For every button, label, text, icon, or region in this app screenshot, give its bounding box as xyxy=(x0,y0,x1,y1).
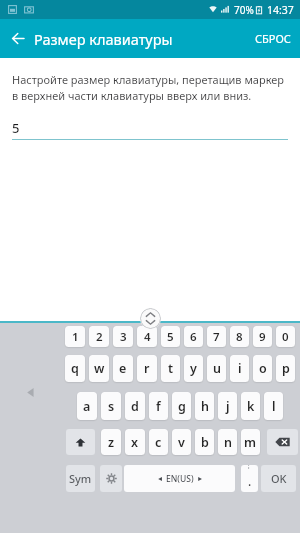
button[interactable]: Settings xyxy=(100,465,122,492)
button[interactable]: 6 xyxy=(184,326,203,347)
staticText: a xyxy=(83,398,91,415)
staticText: j xyxy=(226,398,230,415)
button[interactable]: Back xyxy=(0,19,34,58)
button[interactable]: 9 xyxy=(253,326,272,347)
staticText: b xyxy=(201,434,209,451)
button[interactable]: 2 xyxy=(89,326,109,347)
button[interactable]: ́́́ xyxy=(241,465,258,492)
staticText: 0 xyxy=(282,329,289,345)
staticText: . xyxy=(248,473,252,489)
staticText: СБРОС xyxy=(255,31,291,46)
staticText: n xyxy=(224,434,232,451)
button[interactable]: f xyxy=(149,392,168,420)
button[interactable]: c xyxy=(149,429,168,455)
staticText: f xyxy=(156,398,161,415)
button[interactable]: z xyxy=(101,429,121,455)
button[interactable]: l xyxy=(264,392,283,420)
staticText: 5 xyxy=(167,329,174,345)
button[interactable]: Shift xyxy=(66,429,95,455)
staticText: l xyxy=(272,398,276,415)
button[interactable]: d xyxy=(125,392,145,420)
button[interactable]: 8 xyxy=(230,326,249,347)
button[interactable]: u xyxy=(207,355,226,382)
button[interactable]: b xyxy=(195,429,214,455)
staticText: t xyxy=(168,360,174,377)
staticText: d xyxy=(131,398,139,415)
button[interactable]: n xyxy=(218,429,237,455)
staticText: Настройте размер клавиатуры, перетащив м… xyxy=(12,72,285,87)
button[interactable]: 0 xyxy=(276,326,295,347)
button[interactable]: Back xyxy=(21,383,39,401)
staticText: 1 xyxy=(72,329,79,345)
staticText: 8 xyxy=(236,329,243,345)
staticText: 2 xyxy=(96,329,103,345)
staticText: в верхней части клавиатуры вверх или вни… xyxy=(12,88,252,103)
button[interactable]: OK xyxy=(261,465,296,492)
button[interactable]: k xyxy=(241,392,260,420)
staticText: OK xyxy=(271,471,287,486)
staticText: v xyxy=(178,434,185,451)
staticText: 4 xyxy=(144,329,151,345)
staticText: 14:37 xyxy=(267,3,294,17)
button[interactable]: 5 xyxy=(161,326,180,347)
staticText: m xyxy=(244,434,257,451)
staticText: 5 xyxy=(12,119,20,137)
button[interactable]: y xyxy=(184,355,203,382)
staticText: 70% xyxy=(234,3,254,17)
staticText: i xyxy=(238,360,242,377)
staticText: k xyxy=(247,398,255,415)
button[interactable]: СБРОС xyxy=(246,19,300,58)
staticText: u xyxy=(213,360,221,377)
button[interactable]: 4 xyxy=(137,326,157,347)
button[interactable]: Sym xyxy=(66,465,95,492)
staticText: r xyxy=(144,360,150,377)
staticText: z xyxy=(108,434,115,451)
staticText: q xyxy=(71,360,79,377)
button[interactable]: p xyxy=(276,355,295,382)
button[interactable]: EN(US) xyxy=(124,465,235,492)
staticText: e xyxy=(119,360,127,377)
staticText: 3 xyxy=(120,329,127,345)
staticText: o xyxy=(259,360,267,377)
button[interactable]: a xyxy=(77,392,97,420)
button[interactable]: s xyxy=(101,392,121,420)
staticText: EN(US) xyxy=(166,473,194,485)
staticText: Размер клавиатуры xyxy=(34,29,173,49)
button[interactable]: e xyxy=(113,355,133,382)
staticText: g xyxy=(178,398,186,415)
button[interactable]: Resize keyboard xyxy=(140,308,161,329)
button[interactable]: q xyxy=(65,355,85,382)
staticText: y xyxy=(190,360,197,377)
button[interactable]: 3 xyxy=(113,326,133,347)
button[interactable]: j xyxy=(218,392,237,420)
button[interactable]: o xyxy=(253,355,272,382)
staticText: 6 xyxy=(190,329,197,345)
button[interactable]: m xyxy=(241,429,260,455)
button[interactable]: w xyxy=(89,355,109,382)
staticText: p xyxy=(282,360,290,377)
button[interactable]: i xyxy=(230,355,249,382)
button[interactable]: 1 xyxy=(65,326,85,347)
button[interactable]: x xyxy=(125,429,145,455)
button[interactable]: Backspace xyxy=(267,429,298,455)
button[interactable]: r xyxy=(137,355,157,382)
staticText: s xyxy=(108,398,115,415)
button[interactable]: v xyxy=(172,429,191,455)
button[interactable]: t xyxy=(161,355,180,382)
button[interactable]: h xyxy=(195,392,214,420)
staticText: c xyxy=(155,434,162,451)
button[interactable]: 7 xyxy=(207,326,226,347)
staticText: x xyxy=(131,434,139,451)
staticText: Sym xyxy=(69,471,92,486)
staticText: 9 xyxy=(259,329,266,345)
staticText: w xyxy=(94,360,105,377)
staticText: 7 xyxy=(213,329,220,345)
button[interactable]: g xyxy=(172,392,191,420)
staticText: h xyxy=(201,398,209,415)
